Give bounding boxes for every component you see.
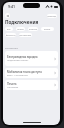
staticText: все <box>7 28 11 31</box>
staticText: Выкл · 2 устройства <box>7 74 28 77</box>
staticText: Мобильная точка доступа <box>7 70 42 74</box>
button[interactable]: все <box>5 27 13 31</box>
button[interactable]: фильтры <box>5 33 16 37</box>
staticText: Беспроводная зарядка <box>7 55 38 59</box>
button[interactable]: Беспроводная зарядка <box>5 51 58 66</box>
button[interactable]: важные <box>28 27 38 31</box>
button[interactable]: помощь <box>47 14 57 18</box>
staticText: устройства <box>5 46 18 49</box>
button[interactable]: новые <box>16 27 25 31</box>
button[interactable]: сортировка <box>19 33 32 37</box>
staticText: Настройка <box>7 86 19 89</box>
staticText: 9:41 <box>8 4 16 9</box>
button[interactable]: Back <box>5 13 10 18</box>
staticText: Печать <box>7 82 17 86</box>
button[interactable]: архив <box>41 27 54 31</box>
staticText: важные <box>29 28 38 31</box>
staticText: Подключения <box>5 19 39 25</box>
staticText: архив <box>44 28 51 31</box>
staticText: сортировка <box>19 34 32 37</box>
staticText: Подключено сейчас <box>7 59 29 62</box>
staticText: помощь <box>47 15 57 18</box>
button[interactable]: Печать <box>5 80 58 90</box>
staticText: фильтры <box>6 34 16 37</box>
staticText: новые <box>17 28 24 31</box>
button[interactable]: Мобильная точка доступа <box>5 68 58 78</box>
